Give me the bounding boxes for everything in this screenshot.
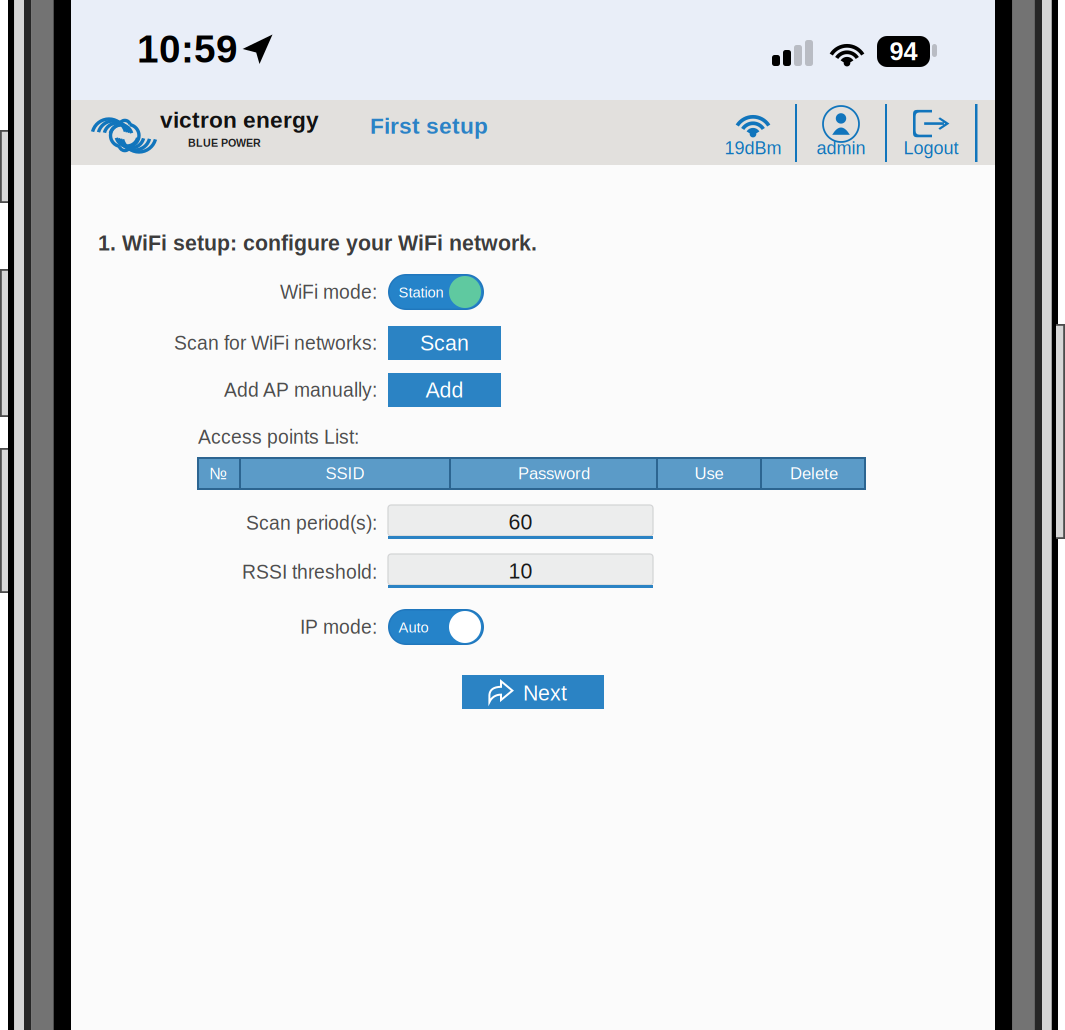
staticText: Scan [420,331,469,355]
button[interactable]: Auto [388,609,484,645]
staticText: Delete [790,464,838,483]
staticText: Use [694,464,723,483]
button[interactable]: admin [797,104,885,162]
staticText: Next [523,681,567,705]
staticText: 60 [508,510,532,534]
staticText: First setup [370,113,488,139]
staticText: admin [816,138,865,158]
staticText: Password [518,464,590,483]
staticText: victron energy [160,107,319,133]
staticText: Access points List: [198,426,359,448]
staticText: 10:59 [137,27,238,71]
staticText: Scan period(s): [246,512,377,534]
staticText: RSSI threshold: [242,561,377,583]
button[interactable]: Station [388,274,484,310]
staticText: IP mode: [300,616,377,638]
staticText: Station [398,284,443,301]
staticText: 94 [889,37,917,66]
staticText: Add [425,378,463,402]
staticText: WiFi mode: [280,281,377,303]
button[interactable]: 19dBm [711,104,795,162]
staticText: 10 [508,559,532,583]
staticText: Auto [398,619,428,636]
button[interactable]: Scan [388,326,501,360]
staticText: Scan for WiFi networks: [174,332,377,354]
staticText: 19dBm [724,138,781,158]
button[interactable]: Next [462,675,604,709]
staticText: № [209,464,227,483]
button[interactable]: Logout [887,104,975,162]
staticText: Add AP manually: [224,379,377,401]
staticText: 1. WiFi setup: configure your WiFi netwo… [98,231,537,255]
staticText: SSID [325,464,364,483]
staticText: Logout [903,138,958,158]
staticText: BLUE POWER [188,137,261,149]
button[interactable]: Add [388,373,501,407]
